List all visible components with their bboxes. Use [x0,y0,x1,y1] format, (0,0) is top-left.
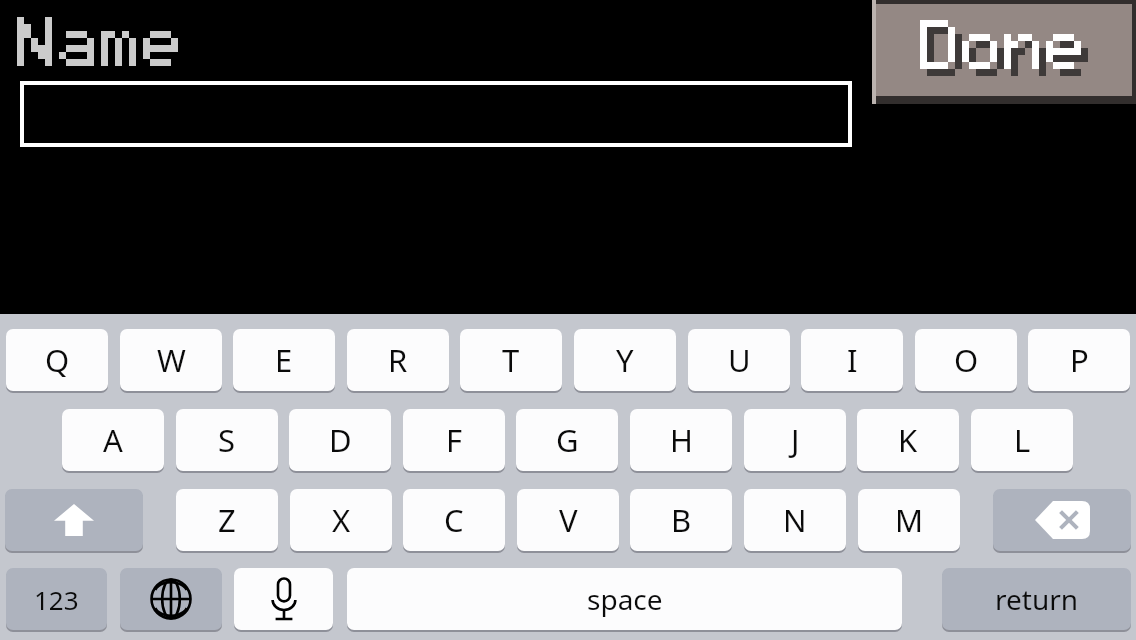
button[interactable]: G [516,409,618,471]
button[interactable]: K [857,409,959,471]
button[interactable]: Y [574,329,676,391]
staticText: space [587,580,663,618]
staticText: D [329,419,352,461]
staticText: O [954,339,979,381]
staticText: W [157,339,186,381]
button[interactable]: C [403,489,505,551]
staticText: A [103,419,123,461]
staticText: U [728,339,751,381]
button[interactable]: L [971,409,1073,471]
button[interactable]: V [517,489,619,551]
staticText: F [446,419,463,461]
staticText: T [502,339,520,381]
staticText: Y [616,339,634,381]
button[interactable]: Shift [5,489,143,551]
staticText: 123 [34,582,79,617]
button[interactable]: E [233,329,335,391]
staticText: X [332,499,351,541]
button[interactable]: S [176,409,278,471]
button[interactable] [872,0,1136,104]
button[interactable]: D [289,409,391,471]
button[interactable]: Q [6,329,108,391]
button[interactable]: Switch keyboard [120,568,222,630]
button[interactable]: P [1028,329,1130,391]
staticText: G [556,419,579,461]
staticText: C [444,499,464,541]
staticText: V [559,499,578,541]
button[interactable]: R [347,329,449,391]
button[interactable]: F [403,409,505,471]
button[interactable]: Z [176,489,278,551]
button[interactable]: A [62,409,164,471]
button[interactable]: I [801,329,903,391]
staticText: H [670,419,693,461]
staticText: Q [45,339,70,381]
button[interactable]: 123 [6,568,107,630]
staticText: B [671,499,692,541]
staticText: P [1070,339,1089,381]
staticText: N [783,499,807,541]
button[interactable]: H [630,409,732,471]
staticText: return [995,580,1079,618]
staticText: J [791,419,800,461]
staticText: S [218,419,236,461]
button[interactable]: U [688,329,790,391]
staticText: E [275,339,293,381]
staticText: R [388,339,408,381]
button[interactable]: N [744,489,846,551]
staticText: K [898,419,918,461]
button[interactable]: T [460,329,562,391]
button[interactable]: W [120,329,222,391]
button[interactable]: M [858,489,960,551]
button[interactable]: Backspace [993,489,1131,551]
button[interactable]: X [290,489,392,551]
staticText: I [847,339,858,381]
button[interactable]: B [630,489,732,551]
button[interactable]: Dictate [234,568,333,630]
button[interactable]: O [915,329,1017,391]
staticText: L [1014,419,1031,461]
button[interactable]: J [744,409,846,471]
button[interactable]: return [942,568,1131,630]
button[interactable] [20,81,852,147]
staticText: M [895,499,924,541]
button[interactable]: space [347,568,902,630]
staticText: Z [218,499,236,541]
